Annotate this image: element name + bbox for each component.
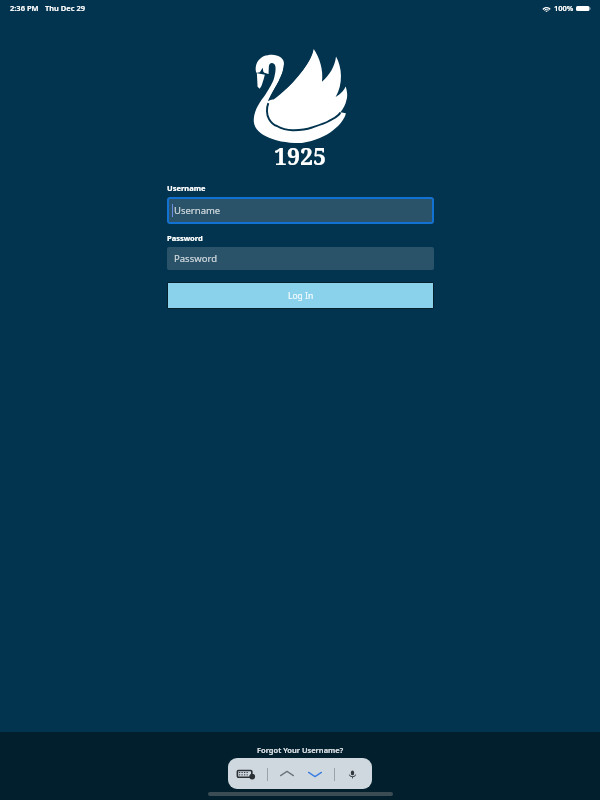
staticText: Username bbox=[167, 183, 206, 193]
staticText: 2:36 PM bbox=[10, 3, 39, 13]
button[interactable]: Next field bbox=[307, 766, 323, 782]
button[interactable]: Forgot Your Username? bbox=[257, 745, 344, 755]
staticText: Password bbox=[167, 233, 203, 243]
button[interactable]: Show keyboard bbox=[237, 766, 256, 782]
staticText: 1925 bbox=[274, 140, 326, 171]
button[interactable]: Dictation bbox=[346, 768, 359, 781]
button[interactable]: Log In bbox=[168, 283, 433, 308]
staticText: 100% bbox=[554, 3, 574, 13]
staticText: Password bbox=[174, 252, 217, 265]
staticText: Username bbox=[174, 204, 221, 217]
button[interactable]: Username bbox=[167, 197, 434, 224]
button[interactable]: Password bbox=[167, 247, 434, 270]
button[interactable]: Previous field bbox=[279, 766, 295, 782]
staticText: Thu Dec 29 bbox=[45, 3, 85, 13]
staticText: Log In bbox=[288, 290, 314, 302]
